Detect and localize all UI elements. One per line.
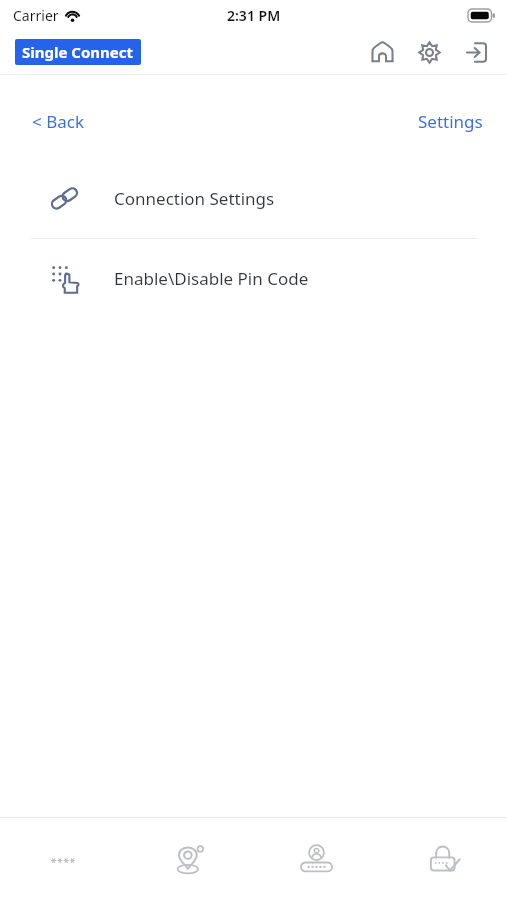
button[interactable]: Pin code [0,818,126,900]
button[interactable]: < Back [19,105,97,138]
staticText: Connection Settings [114,187,275,210]
button[interactable]: Connection Settings [15,159,492,238]
staticText: Carrier [13,6,59,25]
staticText: Single Connect [22,42,134,62]
button[interactable]: Location tracking [126,818,253,900]
button[interactable]: Log in [457,33,495,71]
button[interactable]: Single Connect [15,39,141,65]
staticText: < Back [32,110,84,133]
button[interactable]: Settings [413,105,488,138]
button[interactable]: Secure access [380,818,507,900]
button[interactable]: Settings [410,33,448,71]
staticText: 2:31 PM [227,6,281,25]
button[interactable]: Enable\Disable Pin Code [15,239,492,318]
button[interactable]: Home [363,33,401,71]
staticText: Settings [418,110,483,133]
staticText: Enable\Disable Pin Code [114,267,309,290]
button[interactable]: User credentials [253,818,380,900]
